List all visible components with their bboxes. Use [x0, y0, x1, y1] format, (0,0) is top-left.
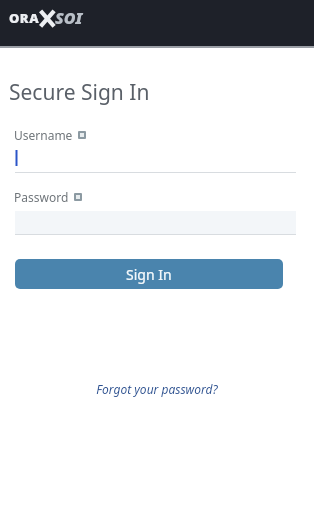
staticText: ORA	[9, 9, 40, 27]
staticText: Username	[14, 127, 73, 143]
button[interactable]: Sign In	[15, 259, 283, 289]
button[interactable]: OraxSOI home	[9, 7, 83, 29]
button[interactable]: Forgot your password?	[96, 381, 218, 397]
staticText: Password	[14, 189, 69, 205]
button[interactable]: Password input	[15, 211, 296, 235]
staticText: SOI	[55, 7, 83, 29]
button[interactable]: Username input	[15, 149, 296, 173]
staticText: Forgot your password?	[96, 381, 218, 397]
staticText: Secure Sign In	[9, 78, 150, 107]
staticText: Sign In	[126, 265, 172, 284]
